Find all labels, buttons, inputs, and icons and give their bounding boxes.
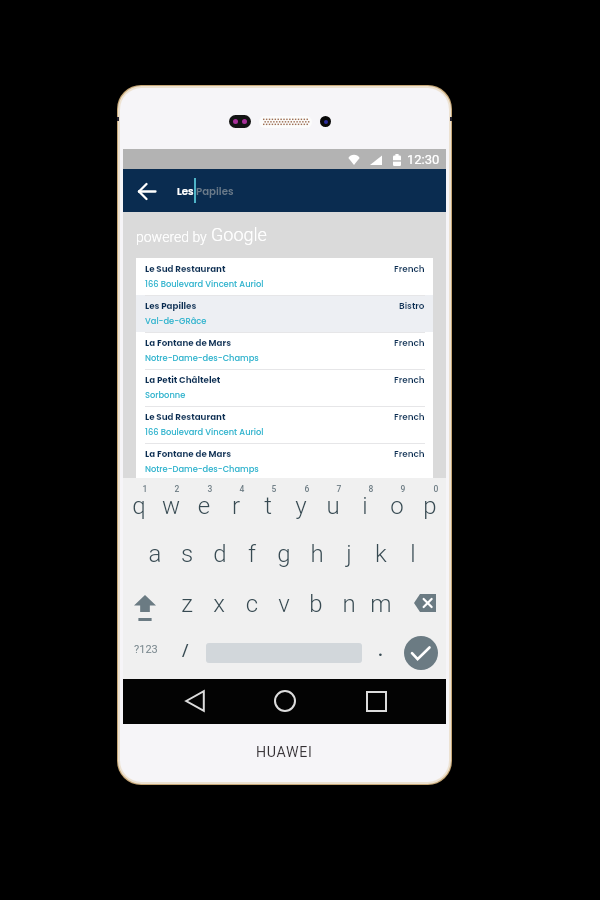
staticText: d — [204, 540, 236, 568]
button[interactable]: j — [333, 526, 365, 576]
button[interactable]: Enter — [404, 636, 438, 670]
staticText: g — [268, 540, 300, 568]
staticText: u — [317, 492, 349, 520]
button[interactable]: 6 — [285, 478, 317, 526]
staticText: French — [394, 374, 425, 386]
staticText: Le Sud Restaurant — [145, 411, 226, 423]
staticText: La Petit Châltelet — [145, 374, 221, 386]
staticText: Papiles — [196, 184, 234, 198]
staticText: / — [182, 640, 189, 660]
button[interactable]: v — [268, 576, 300, 626]
button[interactable]: La Petit Châltelet — [136, 369, 433, 406]
staticText: h — [301, 540, 333, 568]
staticText: 9 — [387, 484, 419, 494]
staticText: French — [394, 411, 425, 423]
button[interactable]: 1 — [123, 478, 155, 526]
staticText: Les — [177, 184, 194, 198]
staticText: v — [268, 590, 300, 618]
staticText: t — [252, 492, 284, 520]
staticText: 8 — [355, 484, 387, 494]
staticText: 0 — [420, 484, 452, 494]
button[interactable]: Back — [175, 682, 215, 720]
button[interactable]: 4 — [220, 478, 252, 526]
button[interactable]: Le Sud Restaurant — [136, 258, 433, 295]
button[interactable]: a — [139, 526, 171, 576]
button[interactable]: La Fontane de Mars — [136, 332, 433, 369]
staticText: q — [123, 492, 155, 520]
button[interactable]: d — [204, 526, 236, 576]
staticText: k — [365, 540, 397, 568]
staticText: l — [397, 540, 429, 568]
button[interactable]: 7 — [317, 478, 349, 526]
button[interactable]: Recents — [356, 682, 396, 720]
button[interactable]: f — [236, 526, 268, 576]
staticText: 4 — [226, 484, 258, 494]
button[interactable]: Shift — [128, 576, 161, 626]
staticText: powered by — [136, 229, 211, 245]
staticText: Google — [211, 224, 267, 245]
button[interactable]: . — [369, 628, 391, 671]
staticText: m — [365, 590, 397, 618]
staticText: Les Papilles — [145, 300, 197, 312]
button[interactable]: 8 — [349, 478, 381, 526]
staticText: Notre-Dame-des-Champs — [145, 352, 259, 364]
staticText: e — [188, 492, 220, 520]
staticText: Le Sud Restaurant — [145, 263, 226, 275]
staticText: 7 — [323, 484, 355, 494]
button[interactable]: k — [365, 526, 397, 576]
button[interactable]: z — [171, 576, 203, 626]
button[interactable]: La Fontane de Mars — [136, 443, 433, 480]
staticText: . — [378, 640, 383, 660]
button[interactable]: l — [397, 526, 429, 576]
button[interactable]: g — [268, 526, 300, 576]
button[interactable]: m — [365, 576, 397, 626]
staticText: y — [285, 492, 317, 520]
staticText: i — [349, 492, 381, 520]
staticText: 1 — [129, 484, 161, 494]
staticText: c — [236, 590, 268, 618]
button[interactable]: 3 — [188, 478, 220, 526]
button[interactable]: h — [301, 526, 333, 576]
button[interactable]: x — [203, 576, 235, 626]
staticText: La Fontane de Mars — [145, 337, 232, 349]
staticText: f — [236, 540, 268, 568]
button[interactable]: c — [236, 576, 268, 626]
button[interactable]: Les Papilles — [136, 295, 433, 332]
staticText: HUAWEI — [256, 744, 313, 761]
staticText: French — [394, 337, 425, 349]
button[interactable]: Home — [265, 682, 305, 720]
staticText: Sorbonne — [145, 389, 186, 401]
staticText: a — [139, 540, 171, 568]
staticText: 6 — [291, 484, 323, 494]
staticText: 166 Boulevard Vincent Auriol — [145, 426, 264, 438]
staticText: w — [155, 492, 187, 520]
staticText: b — [300, 590, 332, 618]
button[interactable]: s — [171, 526, 203, 576]
staticText: Val-de-GRâce — [145, 315, 207, 327]
button[interactable]: 9 — [381, 478, 413, 526]
staticText: French — [394, 263, 425, 275]
staticText: o — [381, 492, 413, 520]
button[interactable]: 2 — [155, 478, 187, 526]
staticText: 5 — [258, 484, 290, 494]
button[interactable]: b — [300, 576, 332, 626]
staticText: x — [203, 590, 235, 618]
staticText: 166 Boulevard Vincent Auriol — [145, 278, 264, 290]
button[interactable]: Le Sud Restaurant — [136, 406, 433, 443]
staticText: s — [171, 540, 203, 568]
staticText: French — [394, 448, 425, 460]
button[interactable]: 5 — [252, 478, 284, 526]
staticText: j — [333, 540, 365, 568]
staticText: 3 — [194, 484, 226, 494]
button[interactable]: / — [173, 628, 197, 671]
staticText: z — [171, 590, 203, 618]
button[interactable]: ?123 — [127, 628, 165, 671]
staticText: Notre-Dame-des-Champs — [145, 463, 259, 475]
button[interactable]: Back — [129, 173, 165, 209]
staticText: n — [333, 590, 365, 618]
button[interactable]: 0 — [414, 478, 446, 526]
button[interactable]: Backspace — [408, 576, 441, 626]
staticText: La Fontane de Mars — [145, 448, 232, 460]
button[interactable]: n — [333, 576, 365, 626]
